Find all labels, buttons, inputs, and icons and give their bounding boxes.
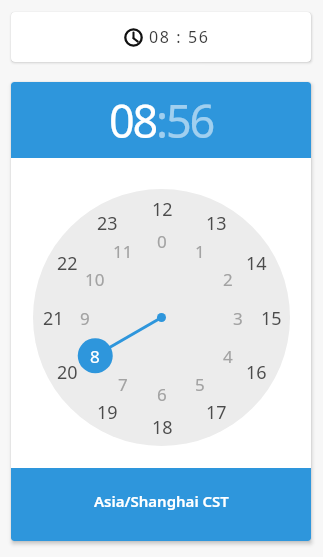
button[interactable]: 13	[199, 211, 233, 235]
button[interactable]: 6	[145, 382, 179, 406]
staticText: 12	[152, 197, 173, 221]
staticText: 4	[223, 345, 233, 368]
button[interactable]: 08:56	[11, 82, 311, 158]
button[interactable]: 08 : 56	[11, 12, 311, 62]
staticText: 9	[80, 307, 90, 330]
staticText: 14	[246, 251, 267, 275]
button[interactable]: 22	[50, 251, 84, 275]
button[interactable]: 4	[211, 344, 245, 368]
staticText: 15	[261, 306, 282, 330]
button[interactable]: 14	[239, 251, 273, 275]
staticText: 22	[57, 251, 78, 275]
staticText: 3	[233, 307, 243, 330]
button[interactable]: 5	[183, 372, 217, 396]
staticText: 20	[57, 360, 78, 384]
button[interactable]: 1	[183, 239, 217, 263]
staticText: 23	[97, 211, 118, 235]
staticText: 21	[43, 306, 64, 330]
button[interactable]: Asia/Shanghai CST	[11, 468, 311, 541]
button[interactable]: 20	[50, 360, 84, 384]
staticText: 7	[118, 373, 128, 396]
staticText: 5	[195, 373, 205, 396]
staticText: 13	[206, 211, 227, 235]
button[interactable]: 0	[145, 229, 179, 253]
button[interactable]: 17	[199, 400, 233, 424]
button[interactable]: 9	[68, 306, 102, 330]
button[interactable]: 10	[78, 267, 112, 291]
button[interactable]: 15	[254, 306, 288, 330]
staticText: 08:56	[109, 90, 214, 151]
staticText: 8	[90, 345, 100, 368]
staticText: 18	[152, 415, 173, 439]
staticText: 10	[85, 268, 105, 291]
button[interactable]: 3	[221, 306, 255, 330]
button[interactable]: 23	[90, 211, 124, 235]
staticText: 6	[157, 383, 167, 406]
button[interactable]: 18	[145, 415, 179, 439]
staticText: 2	[223, 268, 233, 291]
staticText: 1	[195, 240, 205, 263]
button[interactable]: 21	[36, 306, 70, 330]
staticText: 11	[113, 240, 133, 263]
button[interactable]: 7	[106, 372, 140, 396]
staticText: 16	[246, 360, 267, 384]
staticText: 08 : 56	[149, 26, 210, 48]
staticText: 0	[157, 230, 167, 253]
staticText: 17	[206, 400, 227, 424]
button[interactable]: 8	[78, 344, 112, 368]
staticText: Asia/Shanghai CST	[94, 491, 229, 511]
button[interactable]: 12	[145, 197, 179, 221]
button[interactable]: 11	[106, 239, 140, 263]
button[interactable]: 16	[239, 360, 273, 384]
button[interactable]: 19	[90, 400, 124, 424]
staticText: 19	[97, 400, 118, 424]
button[interactable]: 2	[211, 267, 245, 291]
